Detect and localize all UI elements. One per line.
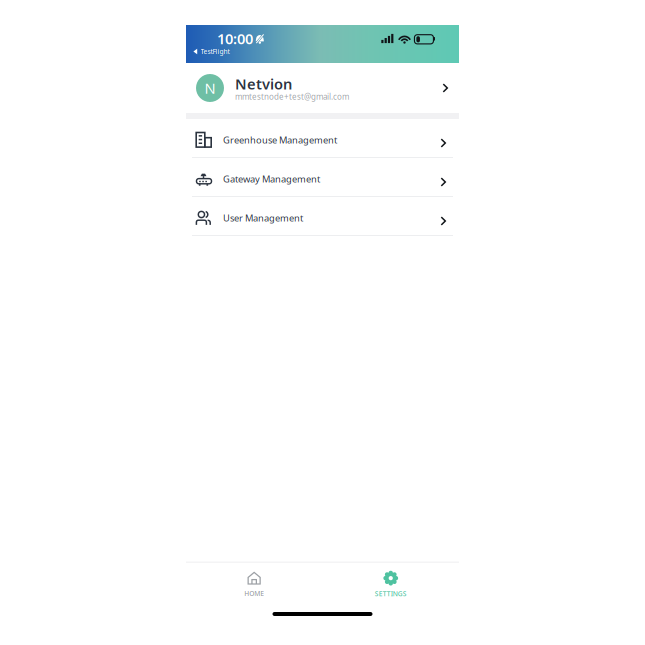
- staticText: User Management: [223, 212, 303, 224]
- button[interactable]: SETTINGS: [322, 571, 459, 598]
- staticText: Gateway Management: [223, 173, 320, 185]
- button[interactable]: Greenhouse Management: [186, 119, 459, 158]
- staticText: SETTINGS: [375, 589, 407, 598]
- staticText: N: [204, 78, 215, 98]
- button[interactable]: HOME: [186, 571, 322, 598]
- staticText: Greenhouse Management: [223, 134, 337, 146]
- button[interactable]: N: [186, 63, 459, 113]
- staticText: TestFlight: [200, 47, 229, 56]
- button[interactable]: Gateway Management: [186, 158, 459, 197]
- staticText: Netvion: [235, 74, 292, 93]
- staticText: mmtestnode+test@gmail.com: [235, 91, 349, 102]
- staticText: 10:00: [217, 29, 253, 48]
- staticText: HOME: [244, 589, 264, 598]
- button[interactable]: Back to TestFlight: [186, 47, 459, 55]
- button[interactable]: User Management: [186, 197, 459, 236]
